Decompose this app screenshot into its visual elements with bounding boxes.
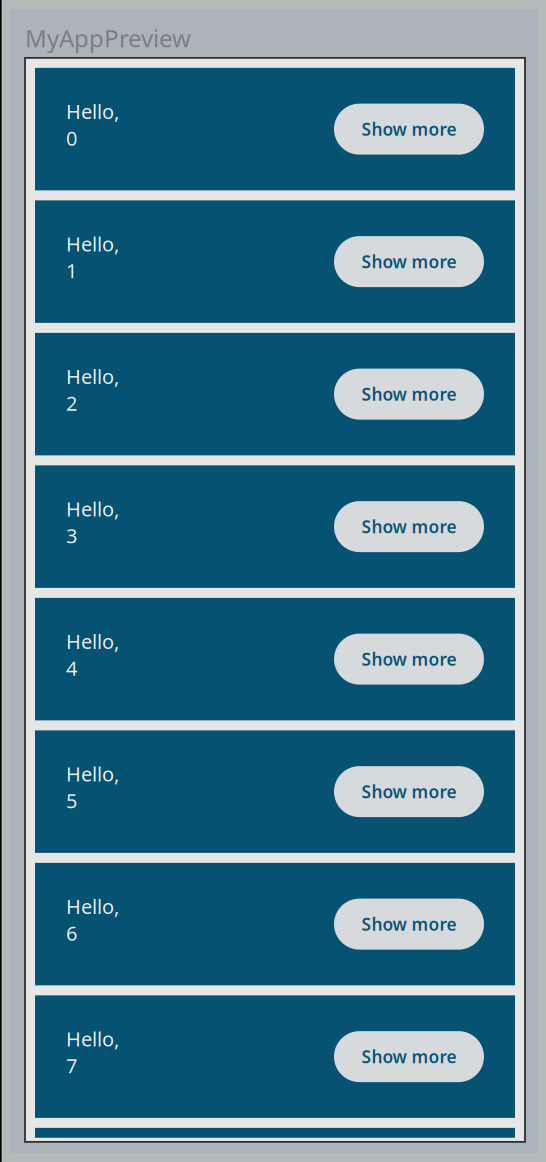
staticText: Hello, 0 bbox=[66, 98, 119, 151]
staticText: Hello, 1 bbox=[66, 231, 119, 284]
staticText: Show more bbox=[361, 1045, 456, 1068]
staticText: Show more bbox=[361, 250, 456, 273]
button[interactable]: Show more bbox=[334, 369, 484, 420]
staticText: Hello, 7 bbox=[66, 1026, 119, 1079]
staticText: Hello, 3 bbox=[66, 496, 119, 549]
staticText: Hello, 5 bbox=[66, 761, 119, 814]
staticText: Show more bbox=[361, 515, 456, 538]
staticText: MyAppPreview bbox=[25, 22, 191, 54]
button[interactable]: Show more bbox=[334, 1031, 484, 1082]
staticText: Show more bbox=[361, 780, 456, 803]
button[interactable]: Show more bbox=[334, 899, 484, 950]
button[interactable]: Show more bbox=[334, 634, 484, 685]
staticText: Show more bbox=[361, 383, 456, 406]
staticText: Hello, 4 bbox=[66, 628, 119, 681]
staticText: Show more bbox=[361, 648, 456, 671]
staticText: Show more bbox=[361, 118, 456, 141]
staticText: Hello, 2 bbox=[66, 363, 119, 416]
button[interactable]: Show more bbox=[334, 501, 484, 552]
staticText: Show more bbox=[361, 913, 456, 936]
button[interactable]: Show more bbox=[334, 236, 484, 287]
button[interactable]: Show more bbox=[334, 104, 484, 155]
staticText: Hello, 6 bbox=[66, 893, 119, 946]
button[interactable]: Show more bbox=[334, 766, 484, 817]
